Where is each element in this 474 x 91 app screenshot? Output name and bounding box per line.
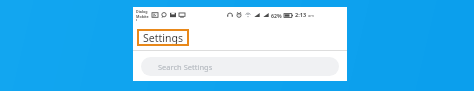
staticText: am: [308, 13, 314, 18]
staticText: 2:13: [295, 11, 307, 19]
button[interactable]: Search Settings: [141, 57, 339, 76]
staticText: 62%: [271, 12, 282, 19]
staticText: Dialog: [136, 9, 148, 14]
button[interactable]: Settings: [137, 29, 189, 46]
staticText: Mobitel: [136, 14, 149, 21]
staticText: Settings: [143, 31, 183, 45]
staticText: Search Settings: [158, 62, 213, 72]
